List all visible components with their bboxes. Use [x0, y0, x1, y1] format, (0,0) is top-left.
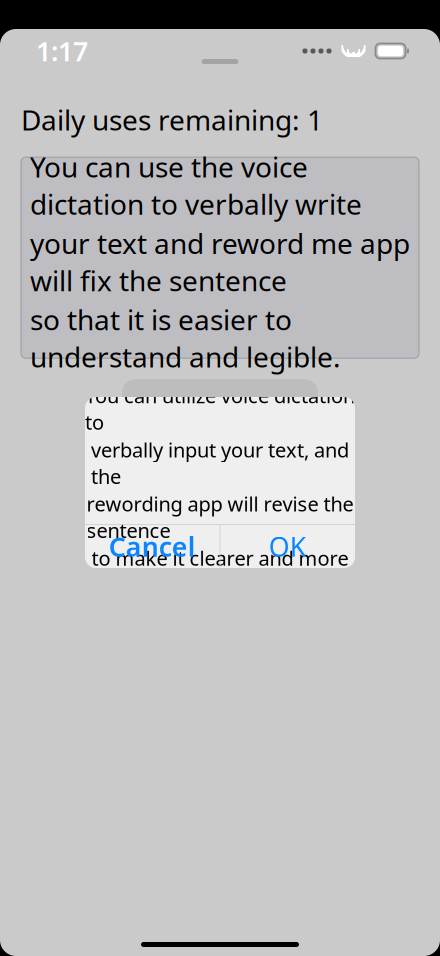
button[interactable]: Cancel [85, 525, 220, 568]
staticText: OK [269, 529, 307, 564]
staticText: Cancel [109, 529, 196, 564]
staticText: verbally input your text, and the [91, 436, 349, 489]
staticText: to make it clearer and more readable. [91, 545, 348, 598]
staticText: your text and reword me app will fix the… [30, 224, 410, 299]
staticText: 1:17 [36, 33, 88, 69]
staticText: rewording app will revise the sentence [86, 490, 353, 544]
button[interactable]: OK [220, 525, 355, 568]
staticText: You can use the voice dictation to verba… [30, 148, 362, 222]
staticText: Confirmation [136, 342, 303, 375]
staticText: Daily uses remaining: 1 [21, 101, 323, 138]
staticText: You can utilize voice dictation to [85, 382, 355, 435]
button[interactable]: Reword [122, 379, 318, 564]
staticText: so that it is easier to understand and l… [30, 301, 341, 375]
